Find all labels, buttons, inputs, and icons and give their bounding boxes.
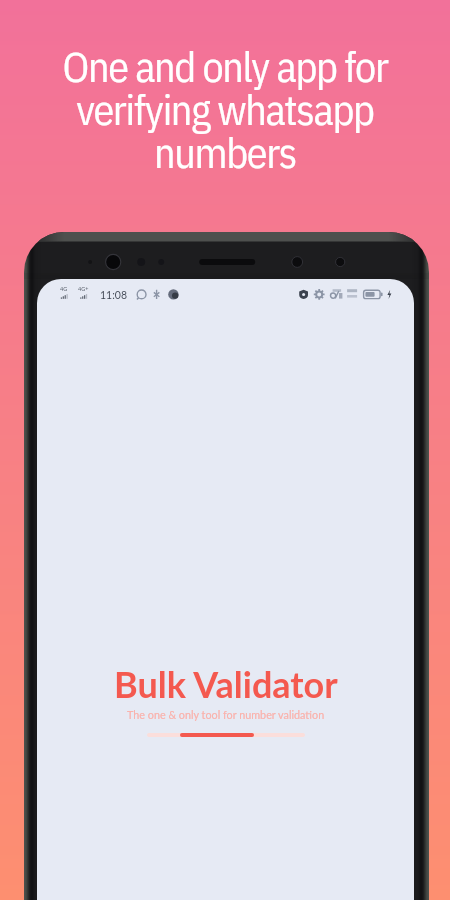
staticText: Bulk Validator [114, 662, 338, 705]
staticText: 11:08 [100, 289, 127, 302]
staticText: 4G [60, 286, 68, 293]
staticText: One and only app for verifying whatsapp … [0, 39, 450, 179]
staticText: The one & only tool for number validatio… [127, 708, 325, 721]
staticText: 4G+ [78, 286, 89, 293]
